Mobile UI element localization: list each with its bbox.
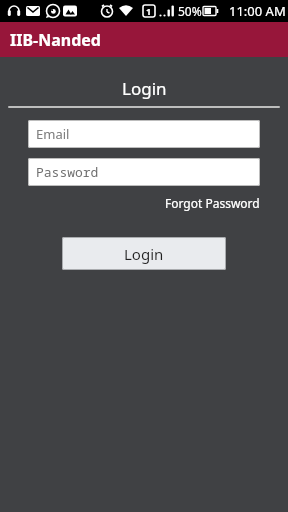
button[interactable]: Forgot Password xyxy=(165,195,260,211)
staticText: Login xyxy=(122,77,167,100)
button[interactable]: Login xyxy=(62,237,226,270)
staticText: IIB-Nanded xyxy=(10,29,101,51)
button[interactable]: Password xyxy=(28,158,260,186)
button[interactable]: Email xyxy=(28,120,260,148)
staticText: 1 xyxy=(146,5,152,17)
staticText: Login xyxy=(124,244,164,264)
staticText: Forgot Password xyxy=(165,195,260,211)
staticText: Email xyxy=(36,125,70,143)
staticText: 50% xyxy=(178,3,202,19)
staticText: Password xyxy=(36,163,99,181)
staticText: 11:00 AM xyxy=(229,2,286,20)
